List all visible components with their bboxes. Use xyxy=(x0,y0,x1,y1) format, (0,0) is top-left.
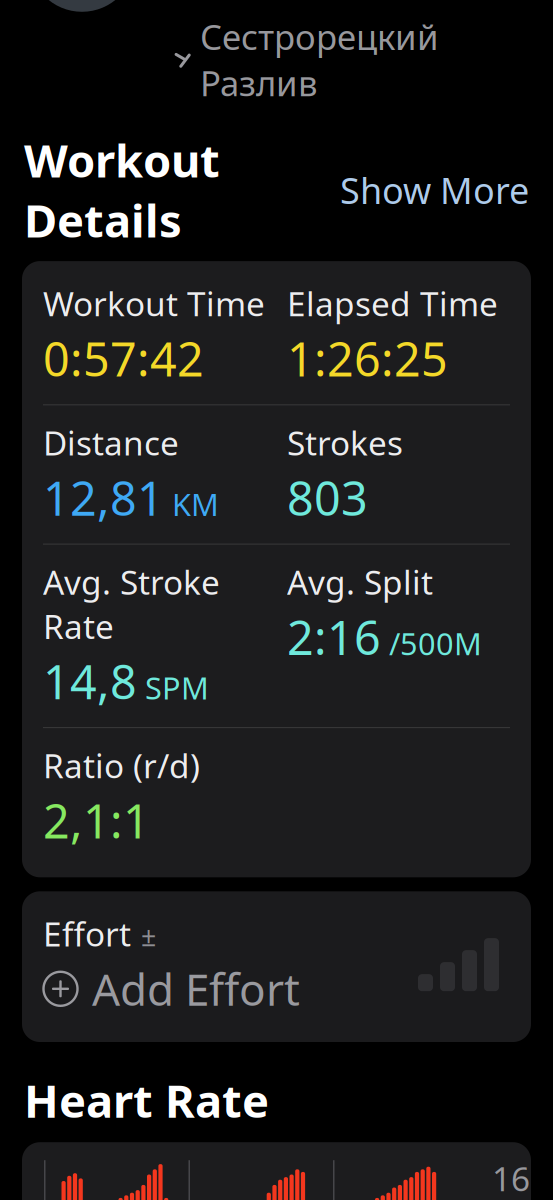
staticText: Workout Details xyxy=(24,130,220,250)
staticText: 167 xyxy=(492,1156,530,1200)
staticText: 803 xyxy=(287,467,368,529)
staticText: SPM xyxy=(145,667,209,708)
staticText: 2:16 xyxy=(287,606,381,668)
staticText: /500M xyxy=(389,623,482,664)
staticText: 12,81 xyxy=(43,467,164,529)
staticText: Show More xyxy=(340,166,529,214)
button[interactable]: Show More xyxy=(328,160,529,220)
button[interactable]: Effort xyxy=(22,891,531,1042)
staticText: Strokes xyxy=(287,420,403,465)
staticText: Avg. Split xyxy=(287,560,433,604)
staticText: 14,8 xyxy=(43,650,137,712)
staticText: Add Effort xyxy=(92,960,300,1018)
staticText: Workout Time xyxy=(43,281,265,325)
staticText: Distance xyxy=(43,420,179,465)
staticText: Avg. Stroke Rate xyxy=(43,560,220,648)
staticText: Effort xyxy=(43,911,131,956)
staticText: 0:57:42 xyxy=(43,327,204,389)
staticText: 1:26:25 xyxy=(287,327,448,389)
staticText: KM xyxy=(172,484,219,525)
staticText: Сестрорецкий Разлив xyxy=(200,14,439,106)
staticText: Ratio (r/d) xyxy=(43,743,200,787)
staticText: 2,1:1 xyxy=(43,789,150,851)
staticText: ± xyxy=(141,918,156,954)
staticText: Heart Rate xyxy=(24,1070,269,1130)
staticText: Elapsed Time xyxy=(287,281,498,325)
